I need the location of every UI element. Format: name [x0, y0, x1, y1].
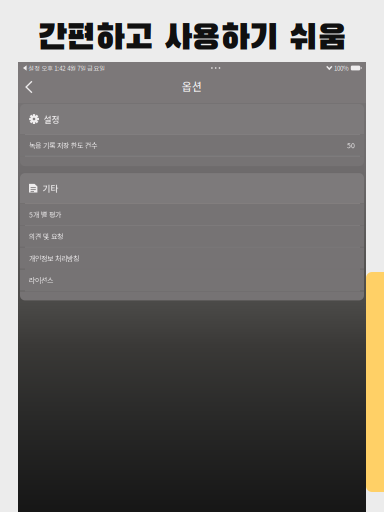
staticText: 개인정보 처리방침: [29, 253, 79, 263]
staticText: 라이선스: [29, 275, 53, 285]
button[interactable]: 개인정보 처리방침: [20, 248, 364, 269]
staticText: 설정: [43, 113, 59, 125]
button[interactable]: Back: [18, 74, 40, 98]
staticText: 100%: [334, 64, 349, 72]
staticText: 옵션: [182, 78, 202, 94]
button[interactable]: 의견 및 요청: [20, 226, 364, 247]
button[interactable]: 5개 별 평가: [20, 204, 364, 225]
staticText: 녹음 기록 저장 한도 건수: [29, 140, 97, 150]
staticText: 5개 별 평가: [29, 209, 61, 219]
staticText: 기타: [42, 182, 58, 194]
staticText: 간편하고 사용하기 쉬움: [37, 22, 346, 57]
staticText: 의견 및 요청: [29, 231, 63, 241]
staticText: 설정 오후 1:42 4월 7일 금요일: [28, 64, 105, 72]
button[interactable]: 라이선스: [20, 269, 364, 291]
staticText: 50: [347, 140, 355, 150]
button[interactable]: 녹음 기록 저장 한도 건수: [20, 135, 364, 156]
